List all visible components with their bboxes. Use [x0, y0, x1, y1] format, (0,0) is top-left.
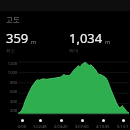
- staticText: 5:13:1: [117, 124, 129, 129]
- staticText: 1200: [7, 61, 17, 66]
- staticText: m: [105, 38, 111, 45]
- staticText: 1000: [7, 70, 17, 75]
- button[interactable]: 1,034: [69, 29, 130, 54]
- staticText: 최대: [69, 48, 78, 54]
- staticText: 400: [10, 99, 17, 104]
- staticText: 4:10:35: [96, 124, 110, 129]
- staticText: 1,034: [69, 29, 103, 47]
- button[interactable]: 고도: [0, 15, 130, 24]
- staticText: 최소: [6, 48, 15, 54]
- staticText: 800: [10, 80, 17, 85]
- staticText: 200: [10, 108, 17, 113]
- button[interactable]: Elevation chart: [0, 59, 130, 130]
- staticText: 359: [6, 29, 29, 47]
- staticText: 0:00: [18, 124, 26, 129]
- staticText: 고도: [6, 15, 20, 24]
- staticText: 3:07:00: [75, 124, 89, 129]
- button[interactable]: 359: [6, 29, 65, 54]
- staticText: m: [31, 38, 37, 45]
- staticText: 600: [10, 89, 17, 94]
- staticText: 2:04:20: [54, 124, 68, 129]
- staticText: 1:02:48: [33, 124, 47, 129]
